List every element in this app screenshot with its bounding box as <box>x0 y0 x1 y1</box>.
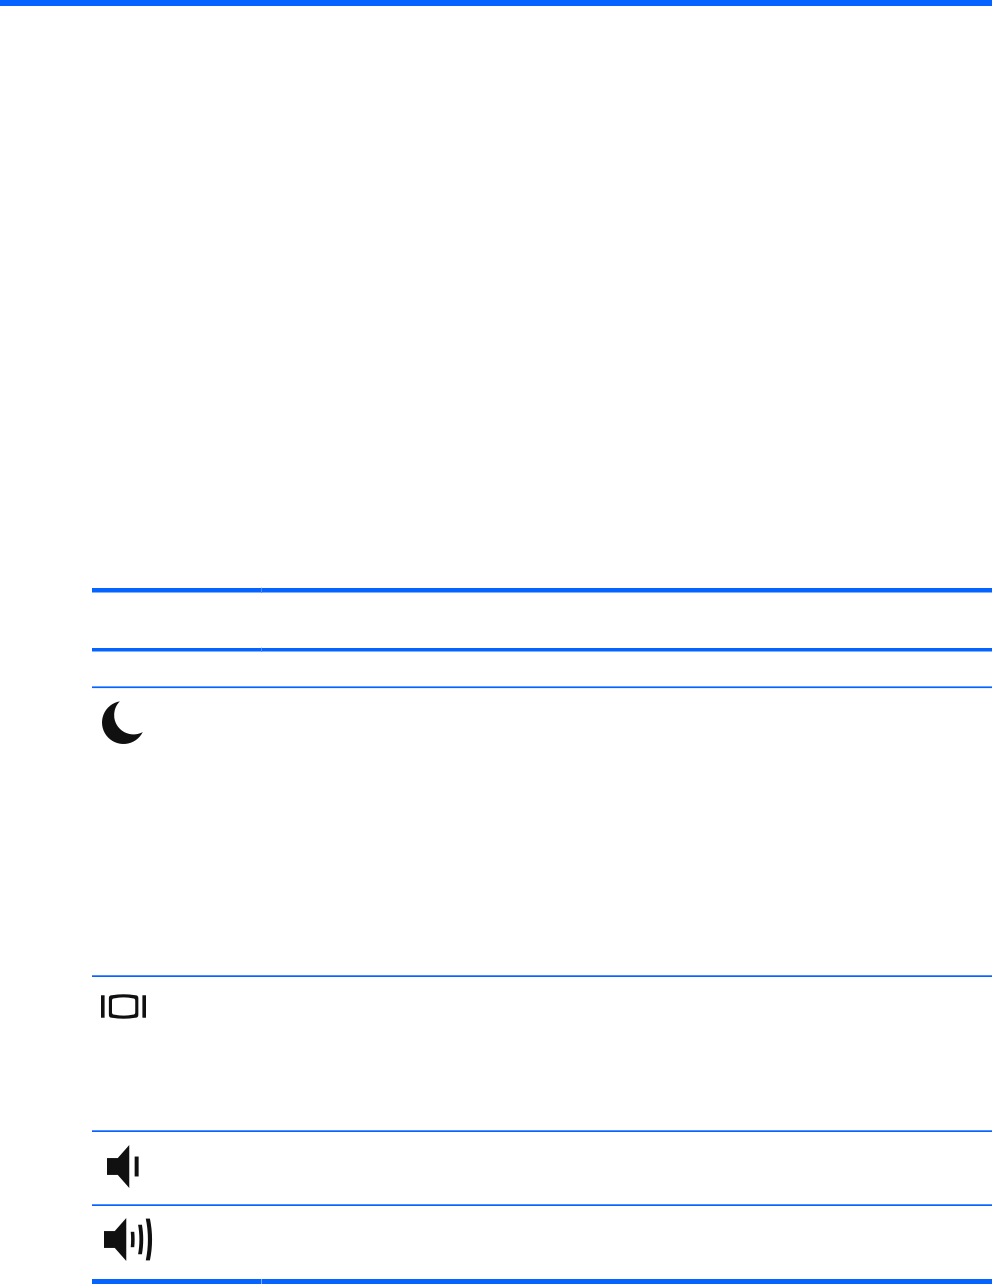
button[interactable]: Switch screen image <box>101 994 146 1019</box>
button[interactable]: Increase speaker volume <box>104 1218 154 1261</box>
button[interactable]: Decrease speaker volume <box>107 1145 142 1188</box>
button[interactable]: Sleep <box>102 701 145 744</box>
